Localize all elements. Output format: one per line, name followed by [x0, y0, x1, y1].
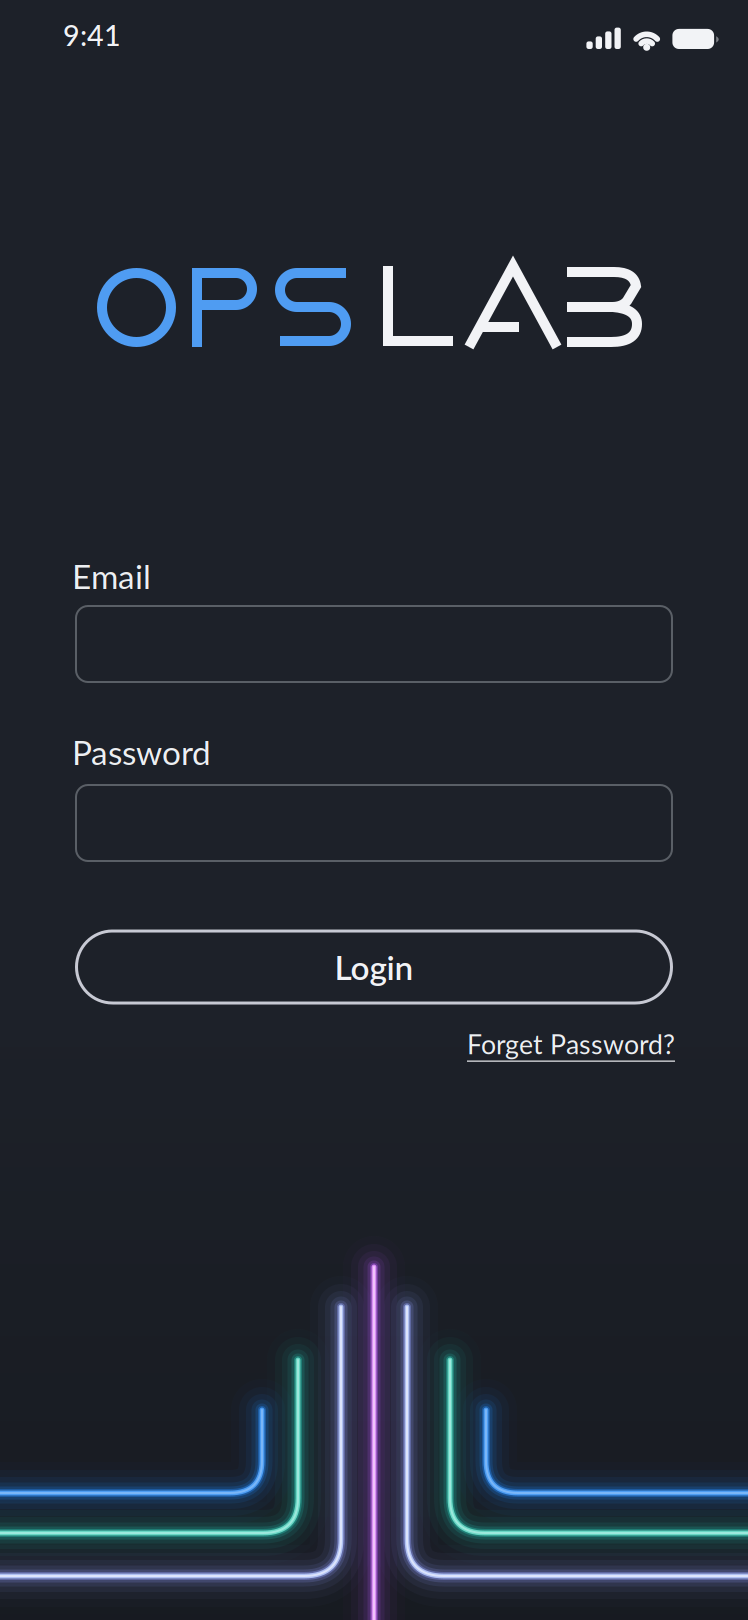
button[interactable]: [75, 605, 673, 683]
button[interactable]: Forget Password?: [467, 1028, 675, 1060]
staticText: Email: [72, 556, 151, 596]
staticText: Forget Password?: [467, 1028, 675, 1060]
staticText: 9:41: [63, 18, 121, 52]
staticText: Login: [334, 947, 413, 987]
button[interactable]: [75, 784, 673, 862]
button[interactable]: Login: [75, 929, 673, 1004]
staticText: Password: [72, 732, 211, 772]
